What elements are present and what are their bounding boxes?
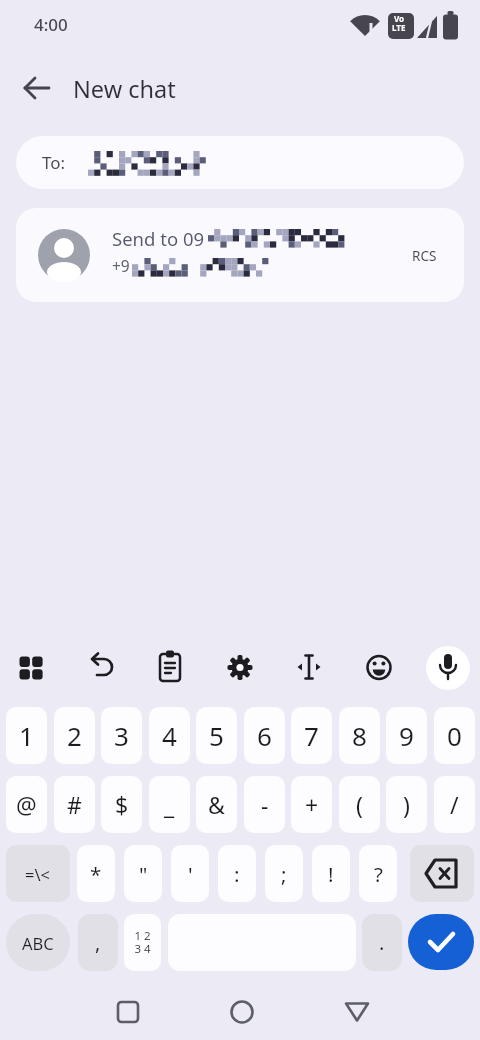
button[interactable] [424, 644, 472, 692]
button[interactable] [146, 644, 194, 692]
staticText: ' [188, 860, 193, 888]
staticText: 6 [257, 718, 272, 753]
staticText: Send to 09 [112, 226, 205, 251]
staticText: . [379, 929, 385, 956]
staticText: & [208, 789, 225, 820]
button[interactable]: ? [359, 845, 397, 902]
button[interactable]: 3 [101, 707, 142, 764]
staticText: @ [16, 789, 37, 820]
button[interactable] [335, 990, 379, 1034]
staticText: 1 [19, 718, 34, 753]
staticText: ! [328, 860, 334, 888]
button[interactable]: ' [171, 845, 209, 902]
button[interactable]: / [434, 776, 475, 833]
button[interactable]: 5 [196, 707, 237, 764]
button[interactable] [77, 644, 125, 692]
staticText: 2 [67, 718, 82, 753]
staticText: LTE [392, 22, 406, 33]
button[interactable]: ( [339, 776, 380, 833]
button[interactable]: 1 [6, 707, 47, 764]
button[interactable]: : [218, 845, 256, 902]
button[interactable]: Send to 09 [16, 208, 464, 302]
button[interactable]: , [78, 914, 118, 971]
button[interactable]: =\< [6, 845, 70, 902]
button[interactable]: 6 [244, 707, 285, 764]
staticText: , [95, 929, 101, 956]
button[interactable] [355, 644, 403, 692]
staticText: * [90, 860, 102, 888]
button[interactable]: 7 [291, 707, 332, 764]
button[interactable]: To: [16, 136, 464, 189]
staticText: " [139, 860, 148, 888]
staticText: $ [115, 789, 129, 820]
button[interactable]: 4 [149, 707, 190, 764]
staticText: 8 [352, 718, 367, 753]
staticText: - [261, 789, 269, 820]
staticText: 9 [399, 718, 414, 753]
staticText: + [305, 789, 319, 820]
button[interactable]: - [244, 776, 285, 833]
staticText: Vo [394, 13, 405, 24]
button[interactable] [408, 914, 474, 970]
button[interactable]: + [291, 776, 332, 833]
button[interactable]: 8 [339, 707, 380, 764]
staticText: 4 [162, 718, 177, 753]
button[interactable]: $ [101, 776, 142, 833]
button[interactable]: 2 [54, 707, 95, 764]
staticText: ABC [22, 932, 54, 954]
button[interactable] [14, 68, 58, 108]
button[interactable]: @ [6, 776, 47, 833]
staticText: 5 [209, 718, 224, 753]
button[interactable] [410, 845, 474, 902]
staticText: ) [403, 789, 410, 820]
staticText: ( [356, 789, 363, 820]
staticText: 3 [114, 718, 129, 753]
button[interactable] [285, 644, 333, 692]
button[interactable] [7, 644, 55, 692]
button[interactable]: 9 [386, 707, 427, 764]
button[interactable]: ABC [6, 914, 70, 971]
button[interactable]: ) [386, 776, 427, 833]
button[interactable]: 0 [434, 707, 475, 764]
button[interactable]: 1 2 3 4 [124, 914, 161, 971]
staticText: : [234, 860, 240, 888]
staticText: / [450, 789, 459, 820]
staticText: 7 [304, 718, 319, 753]
button[interactable]: ! [312, 845, 350, 902]
button[interactable] [106, 990, 150, 1034]
button[interactable]: ; [265, 845, 303, 902]
staticText: 0 [447, 718, 462, 753]
button[interactable] [220, 990, 264, 1034]
staticText: =\< [25, 863, 51, 885]
button[interactable]: " [124, 845, 162, 902]
button[interactable]: _ [149, 776, 190, 833]
button[interactable]: & [196, 776, 237, 833]
staticText: New chat [73, 73, 176, 105]
staticText: 4:00 [34, 13, 68, 36]
staticText: 1 2 3 4 [134, 928, 151, 957]
button[interactable]: # [54, 776, 95, 833]
staticText: RCS [412, 247, 437, 265]
staticText: To: [42, 151, 66, 174]
button[interactable]: . [362, 914, 402, 971]
staticText: _ [164, 789, 175, 820]
button[interactable] [216, 644, 264, 692]
staticText: +9 [112, 255, 130, 276]
button[interactable]: * [77, 845, 115, 902]
staticText: ? [374, 860, 383, 888]
staticText: ; [281, 860, 287, 888]
staticText: # [67, 789, 82, 820]
